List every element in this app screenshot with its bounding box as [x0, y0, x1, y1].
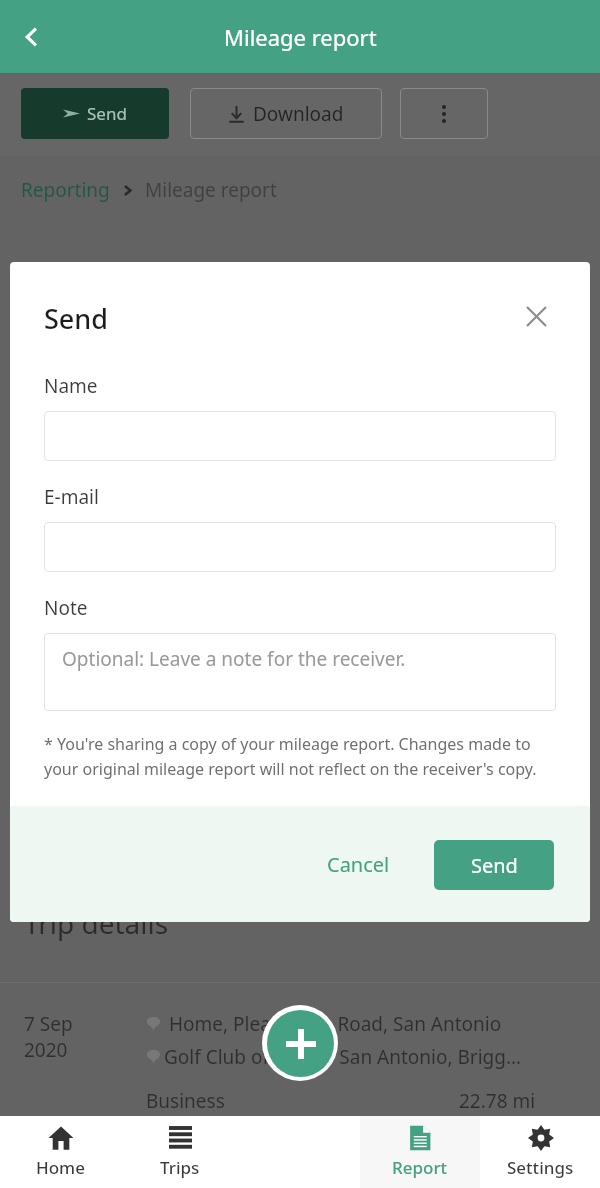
staticText: Trip details — [24, 904, 169, 942]
button[interactable]: Settings — [480, 1116, 600, 1188]
button[interactable]: Close — [516, 296, 556, 336]
staticText: 7 Sep — [24, 1011, 73, 1037]
staticText: * You're sharing a copy of your mileage … — [44, 733, 556, 779]
staticText: Note — [44, 595, 88, 621]
staticText: Download — [253, 101, 344, 127]
button[interactable]: Report — [360, 1116, 480, 1188]
staticText: Trips — [160, 1156, 200, 1179]
staticText: Report — [392, 1156, 448, 1179]
button[interactable]: Download — [190, 88, 382, 139]
staticText: Send — [44, 300, 109, 337]
button[interactable] — [44, 522, 556, 572]
button[interactable]: Cancel — [309, 839, 408, 890]
staticText: Send — [87, 102, 127, 125]
staticText: Golf Club of Texas - San Antonio, Brigg… — [164, 1044, 522, 1070]
staticText: Home — [36, 1156, 85, 1179]
button[interactable]: Trips — [120, 1116, 240, 1188]
button[interactable]: Send — [21, 88, 169, 139]
staticText: Settings — [507, 1156, 574, 1179]
button[interactable] — [44, 411, 556, 461]
staticText: Send — [471, 852, 518, 879]
button[interactable]: Back — [8, 13, 56, 61]
staticText: Optional: Leave a note for the receiver. — [62, 646, 406, 672]
button[interactable]: Optional: Leave a note for the receiver. — [44, 633, 556, 711]
button[interactable]: Reporting — [21, 177, 110, 203]
staticText: Name — [44, 373, 98, 399]
staticText: E-mail — [44, 484, 99, 510]
staticText: Cancel — [327, 851, 390, 878]
staticText: 2020 — [24, 1037, 68, 1063]
staticText: Mileage report — [224, 22, 377, 52]
button[interactable]: Add trip — [267, 1010, 334, 1077]
staticText: Home, Pleasanton Road, San Antonio — [169, 1011, 502, 1037]
button[interactable]: Home — [0, 1116, 120, 1188]
button[interactable]: Send — [434, 840, 554, 890]
button[interactable]: More options — [400, 88, 488, 139]
staticText: Mileage report — [145, 177, 277, 203]
staticText: 22.78 mi — [459, 1088, 536, 1114]
staticText: Business — [146, 1088, 225, 1114]
